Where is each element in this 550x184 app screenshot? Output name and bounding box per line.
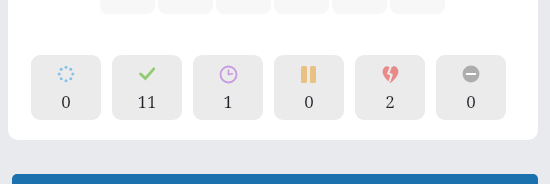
button[interactable]: Paused (274, 55, 344, 120)
staticText: 11 (137, 90, 157, 113)
staticText: 0 (304, 90, 314, 113)
staticText: 2 (385, 90, 395, 113)
button[interactable]: Running (193, 55, 263, 120)
button[interactable] (12, 174, 538, 184)
button[interactable]: Failed (355, 55, 425, 120)
staticText: 0 (61, 90, 71, 113)
button[interactable]: Passed (112, 55, 182, 120)
button[interactable]: Pending (31, 55, 101, 120)
staticText: 0 (466, 90, 476, 113)
button[interactable]: Skipped (436, 55, 506, 120)
staticText: 1 (223, 90, 233, 113)
